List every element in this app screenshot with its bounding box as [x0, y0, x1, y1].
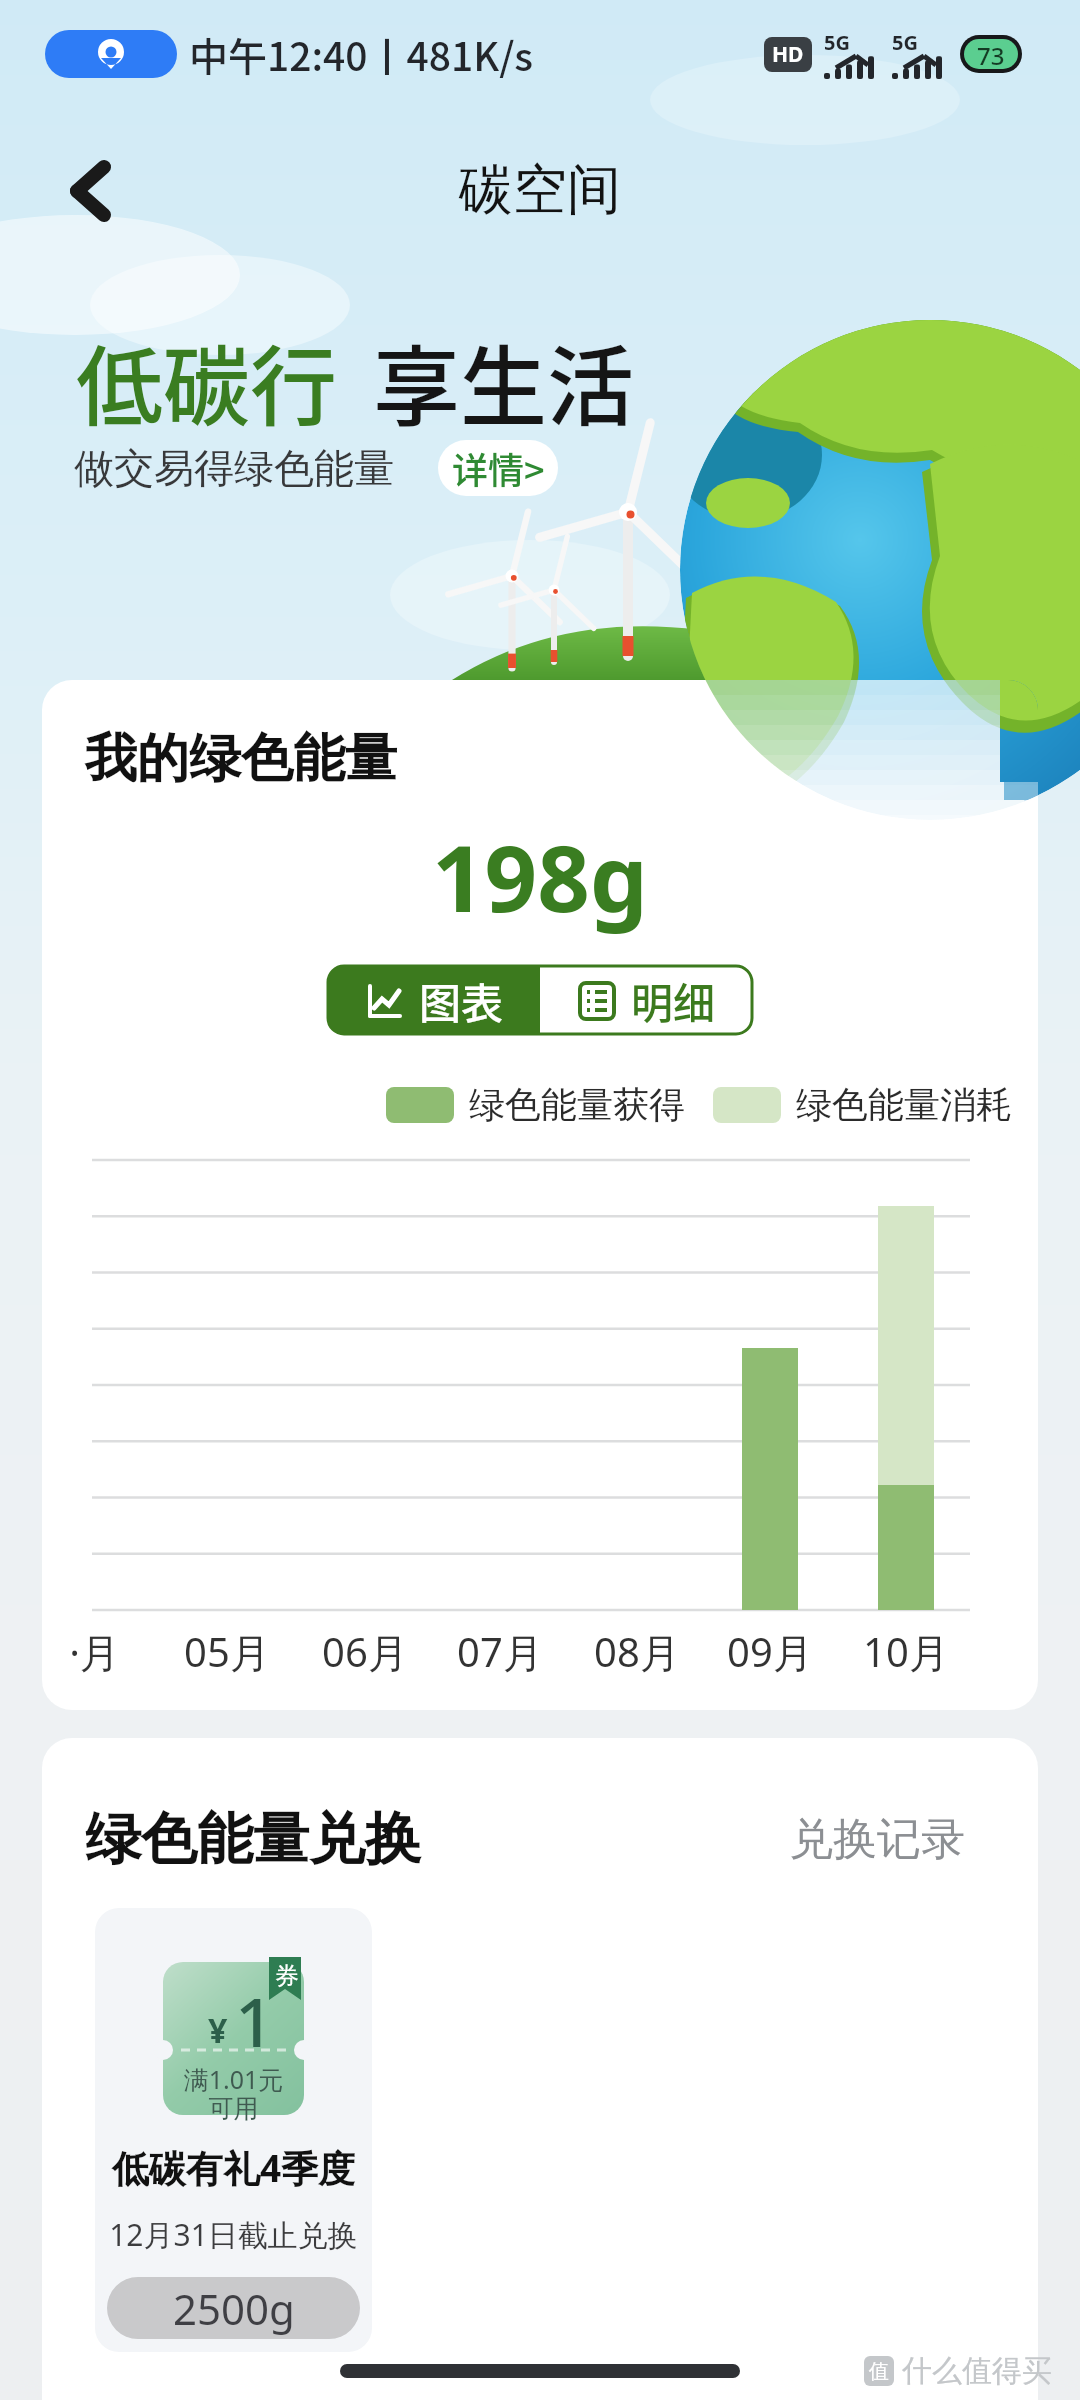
- staticText: 值: [869, 2359, 889, 2384]
- staticText: 5G: [824, 29, 850, 56]
- staticText: 10月: [863, 1624, 949, 1679]
- button[interactable]: 兑换记录: [789, 1812, 965, 1867]
- staticText: 详情>: [452, 442, 545, 494]
- staticText: 绿色能量获得: [469, 1082, 685, 1127]
- staticText: 08月: [594, 1624, 680, 1679]
- button[interactable]: 2500g: [107, 2277, 360, 2339]
- staticText: 12月31日截止兑换: [95, 2214, 372, 2255]
- staticText: 享生活: [373, 318, 634, 444]
- button[interactable]: 明细: [540, 966, 752, 1034]
- button[interactable]: [45, 30, 177, 78]
- button[interactable]: ¥: [95, 1908, 372, 2352]
- staticText: 198g: [42, 814, 1038, 939]
- staticText: 09月: [727, 1624, 813, 1679]
- staticText: 图表: [419, 970, 504, 1031]
- staticText: 1: [235, 1974, 274, 2067]
- staticText: ·月: [69, 1624, 120, 1679]
- button[interactable]: 图表: [328, 966, 540, 1034]
- staticText: 我的绿色能量: [85, 726, 397, 792]
- button[interactable]: 详情>: [438, 440, 558, 496]
- staticText: 什么值得买: [902, 2352, 1052, 2390]
- staticText: 2500g: [173, 2280, 295, 2337]
- staticText: 碳空间: [459, 156, 621, 224]
- staticText: 中午12:40丨481K/s: [189, 26, 534, 82]
- staticText: HD: [772, 40, 804, 69]
- button[interactable]: [62, 162, 122, 222]
- staticText: 满1.01元: [163, 2062, 304, 2096]
- staticText: 06月: [322, 1624, 408, 1679]
- staticText: 券: [275, 1961, 299, 1991]
- staticText: 07月: [457, 1624, 543, 1679]
- staticText: 明细: [631, 970, 716, 1031]
- staticText: 做交易得绿色能量: [74, 443, 394, 493]
- staticText: 低碳有礼4季度: [95, 2142, 372, 2193]
- staticText: 73: [977, 39, 1005, 69]
- staticText: ¥: [208, 2007, 228, 2053]
- staticText: 5G: [892, 29, 918, 56]
- staticText: 绿色能量消耗: [796, 1082, 1012, 1127]
- staticText: 低碳行: [76, 318, 337, 444]
- staticText: 绿色能量兑换: [85, 1804, 421, 1875]
- staticText: 可用: [163, 2093, 304, 2124]
- staticText: 05月: [184, 1624, 270, 1679]
